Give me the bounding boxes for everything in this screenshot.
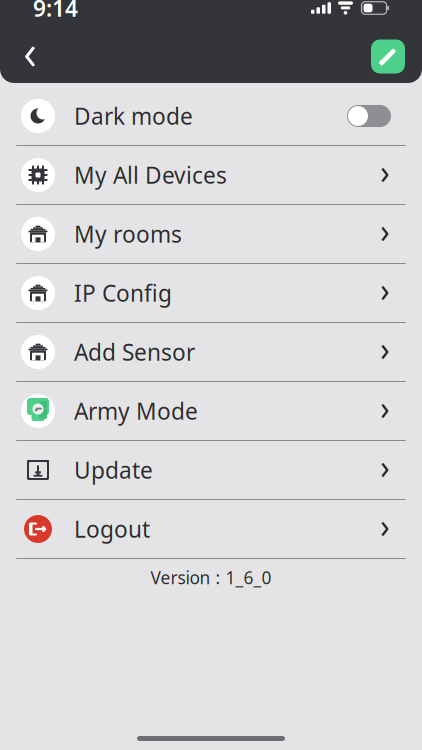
button[interactable]: IP Config [0,264,422,323]
button[interactable]: Back [8,34,52,78]
staticText: My rooms [74,219,182,249]
button[interactable]: Logout [0,500,422,559]
button[interactable]: Army Mode [0,382,422,441]
button[interactable]: Update [0,441,422,500]
staticText: Add Sensor [74,337,195,367]
staticText: Update [74,455,153,485]
button[interactable]: My rooms [0,205,422,264]
staticText: Version : 1_6_0 [150,566,271,589]
staticText: Logout [74,514,150,544]
staticText: IP Config [74,278,172,308]
staticText: My All Devices [74,160,227,190]
button[interactable]: Edit [371,39,405,73]
staticText: Army Mode [74,396,198,426]
staticText: Dark mode [74,101,193,131]
button[interactable]: My All Devices [0,146,422,205]
button[interactable]: Add Sensor [0,323,422,382]
staticText: 9:14 [33,0,78,23]
